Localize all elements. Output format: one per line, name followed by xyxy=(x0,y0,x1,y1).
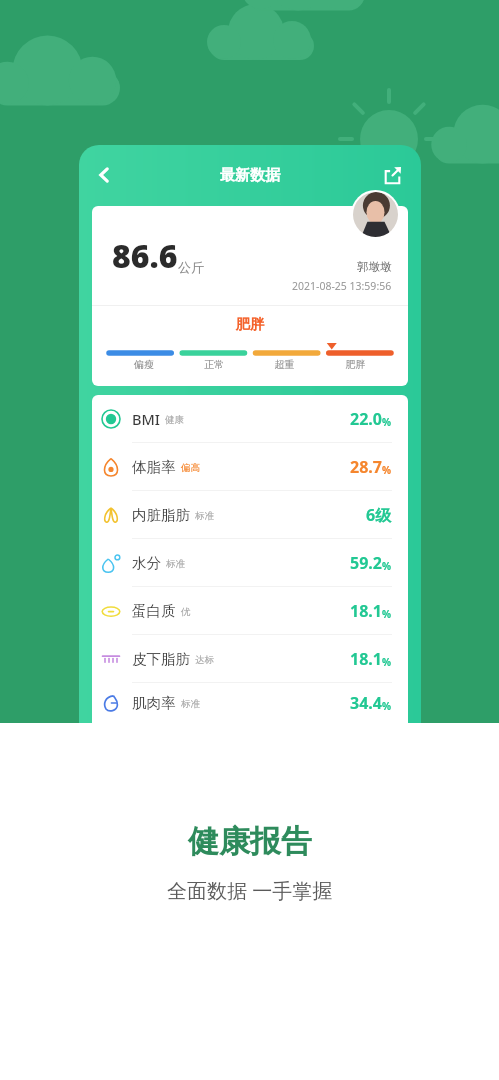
staticText: 蛋白质 xyxy=(132,602,176,620)
staticText: 正常 xyxy=(179,358,249,371)
staticText: 优 xyxy=(181,606,191,618)
staticText: 22.0 xyxy=(350,408,382,430)
staticText: 28.7 xyxy=(350,456,382,478)
staticText: 最新数据 xyxy=(220,166,280,185)
button[interactable]: 蛋白质 xyxy=(92,587,408,634)
staticText: % xyxy=(382,559,392,573)
staticText: % xyxy=(382,415,392,429)
staticText: 肌肉率 xyxy=(132,694,176,712)
staticText: 6级 xyxy=(366,504,392,526)
button[interactable]: Back xyxy=(83,154,125,196)
staticText: 体脂率 xyxy=(132,458,176,476)
staticText: 2021-08-25 13:59:56 xyxy=(292,279,392,293)
button[interactable]: BMI xyxy=(92,395,408,442)
staticText: 肥胖 xyxy=(92,315,408,333)
staticText: 健康 xyxy=(165,414,184,426)
staticText: 18.1 xyxy=(350,600,382,622)
staticText: % xyxy=(382,607,392,621)
button[interactable]: 内脏脂肪 xyxy=(92,491,408,538)
staticText: 18.1 xyxy=(350,648,382,670)
staticText: 超重 xyxy=(249,358,320,371)
staticText: 公斤 xyxy=(178,259,204,275)
staticText: % xyxy=(382,463,392,477)
button[interactable]: 水分 xyxy=(92,539,408,586)
staticText: BMI xyxy=(132,409,160,429)
staticText: 偏瘦 xyxy=(109,358,179,371)
staticText: 皮下脂肪 xyxy=(132,650,190,668)
staticText: % xyxy=(382,699,392,713)
staticText: 水分 xyxy=(132,554,161,572)
staticText: 健康报告 xyxy=(188,822,312,861)
staticText: 达标 xyxy=(195,654,214,666)
staticText: % xyxy=(382,655,392,669)
button[interactable]: 皮下脂肪 xyxy=(92,635,408,682)
staticText: 标准 xyxy=(166,558,185,570)
staticText: 59.2 xyxy=(350,552,382,574)
button[interactable]: Share xyxy=(373,156,411,194)
staticText: 86.6 xyxy=(112,234,178,278)
button[interactable]: 肌肉率 xyxy=(92,683,408,723)
staticText: 标准 xyxy=(181,698,200,710)
staticText: 全面数据 一手掌握 xyxy=(167,877,333,904)
staticText: 偏高 xyxy=(181,462,200,474)
staticText: 肥胖 xyxy=(320,358,391,371)
staticText: 标准 xyxy=(195,510,214,522)
staticText: 内脏脂肪 xyxy=(132,506,190,524)
staticText: 34.4 xyxy=(350,692,382,714)
button[interactable]: 体脂率 xyxy=(92,443,408,490)
staticText: 郭墩墩 xyxy=(357,260,392,274)
